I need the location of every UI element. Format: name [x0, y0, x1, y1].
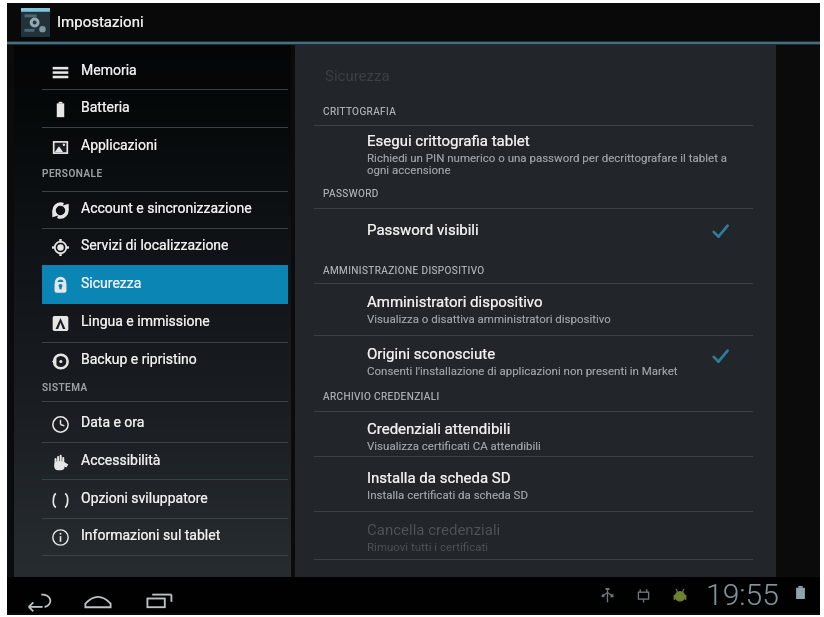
- button[interactable]: Installa da scheda SD: [314, 457, 753, 511]
- staticText: Credenziali attendibili: [367, 420, 511, 438]
- staticText: Opzioni sviluppatore: [81, 490, 208, 506]
- staticText: Password visibili: [367, 221, 479, 239]
- staticText: Sicurezza: [325, 67, 390, 85]
- button[interactable]: Backup e ripristino: [42, 341, 288, 380]
- button[interactable]: Back: [22, 583, 56, 617]
- staticText: Servizi di localizzazione: [81, 237, 229, 253]
- button[interactable]: Amministratori dispositivo: [314, 284, 753, 335]
- staticText: CRITTOGRAFIA: [323, 106, 397, 118]
- staticText: Lingua e immissione: [81, 313, 210, 329]
- button[interactable]: Informazioni sul tablet: [42, 517, 288, 556]
- button[interactable]: Opzioni sviluppatore: [42, 480, 288, 519]
- staticText: Installa da scheda SD: [367, 469, 511, 487]
- staticText: Richiedi un PIN numerico o una password …: [367, 151, 728, 164]
- staticText: 19:55: [706, 577, 779, 612]
- staticText: Informazioni sul tablet: [81, 527, 221, 543]
- button[interactable]: Sicurezza: [42, 265, 288, 304]
- staticText: Rimuovi tutti i certificati: [367, 540, 488, 553]
- staticText: PASSWORD: [323, 188, 379, 200]
- staticText: Origini sconosciute: [367, 345, 496, 363]
- button[interactable]: Batteria: [42, 89, 288, 128]
- staticText: Sicurezza: [81, 275, 142, 291]
- staticText: AMMINISTRAZIONE DISPOSITIVO: [323, 265, 485, 277]
- button[interactable]: Recents: [143, 583, 177, 617]
- staticText: Visualizza certificati CA attendibili: [367, 439, 541, 452]
- staticText: ogni accensione: [367, 163, 451, 176]
- staticText: Backup e ripristino: [81, 351, 197, 367]
- button[interactable]: Cancella credenziali: [314, 512, 753, 558]
- staticText: PERSONALE: [42, 168, 103, 180]
- button[interactable]: Applicazioni: [42, 127, 288, 166]
- staticText: Memoria: [81, 62, 137, 78]
- button[interactable]: Esegui crittografia tablet: [314, 126, 753, 194]
- staticText: Visualizza o disattiva amministratori di…: [367, 312, 611, 325]
- staticText: Applicazioni: [81, 137, 158, 153]
- staticText: Data e ora: [81, 414, 145, 430]
- button[interactable]: Impostazioni: [7, 3, 820, 41]
- staticText: Esegui crittografia tablet: [367, 132, 530, 150]
- button[interactable]: Memoria: [42, 52, 288, 91]
- button[interactable]: Origini sconosciute: [314, 336, 753, 398]
- staticText: SISTEMA: [42, 382, 88, 394]
- staticText: Consenti l'installazione di applicazioni…: [367, 364, 678, 377]
- staticText: Impostazioni: [57, 13, 144, 31]
- button[interactable]: Credenziali attendibili: [314, 412, 753, 456]
- button[interactable]: Account e sincronizzazione: [42, 190, 288, 229]
- staticText: Accessibilità: [81, 452, 161, 468]
- staticText: Installa certificati da scheda SD: [367, 488, 528, 501]
- staticText: Batteria: [81, 99, 130, 115]
- button[interactable]: Password visibili: [314, 209, 753, 271]
- button[interactable]: Accessibilità: [42, 442, 288, 481]
- staticText: Amministratori dispositivo: [367, 293, 543, 311]
- button[interactable]: Status: [598, 577, 814, 613]
- staticText: Account e sincronizzazione: [81, 200, 252, 216]
- staticText: Cancella credenziali: [367, 521, 501, 539]
- button[interactable]: Data e ora: [42, 404, 288, 443]
- button[interactable]: Home: [81, 583, 115, 617]
- button[interactable]: Servizi di localizzazione: [42, 227, 288, 266]
- button[interactable]: Lingua e immissione: [42, 303, 288, 342]
- staticText: ARCHIVIO CREDENZIALI: [323, 391, 440, 403]
